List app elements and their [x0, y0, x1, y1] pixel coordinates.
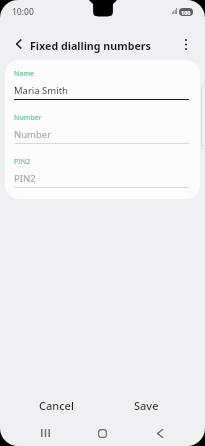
button[interactable]: Back — [8, 33, 30, 55]
staticText: Number — [14, 113, 42, 123]
button[interactable]: Back — [139, 420, 181, 446]
staticText: Fixed dialling numbers — [30, 39, 151, 54]
staticText: Name — [14, 69, 35, 79]
staticText: Cancel — [39, 398, 74, 413]
staticText: Number — [14, 128, 52, 141]
staticText: 10:00 — [12, 6, 34, 18]
button[interactable]: Save — [107, 390, 186, 420]
staticText: PIN2 — [14, 172, 36, 185]
button[interactable]: Home — [81, 420, 123, 446]
button[interactable]: PIN2 — [14, 60, 189, 73]
button[interactable]: Recent apps — [24, 420, 66, 446]
button[interactable]: Name — [14, 60, 189, 73]
button[interactable]: Cancel — [17, 390, 96, 420]
staticText: Maria Smith — [14, 84, 68, 97]
staticText: PIN2 — [14, 157, 31, 167]
button[interactable]: Number — [14, 60, 189, 73]
staticText: 100 — [181, 9, 191, 16]
staticText: Save — [134, 398, 159, 413]
button[interactable]: More options — [175, 33, 197, 55]
